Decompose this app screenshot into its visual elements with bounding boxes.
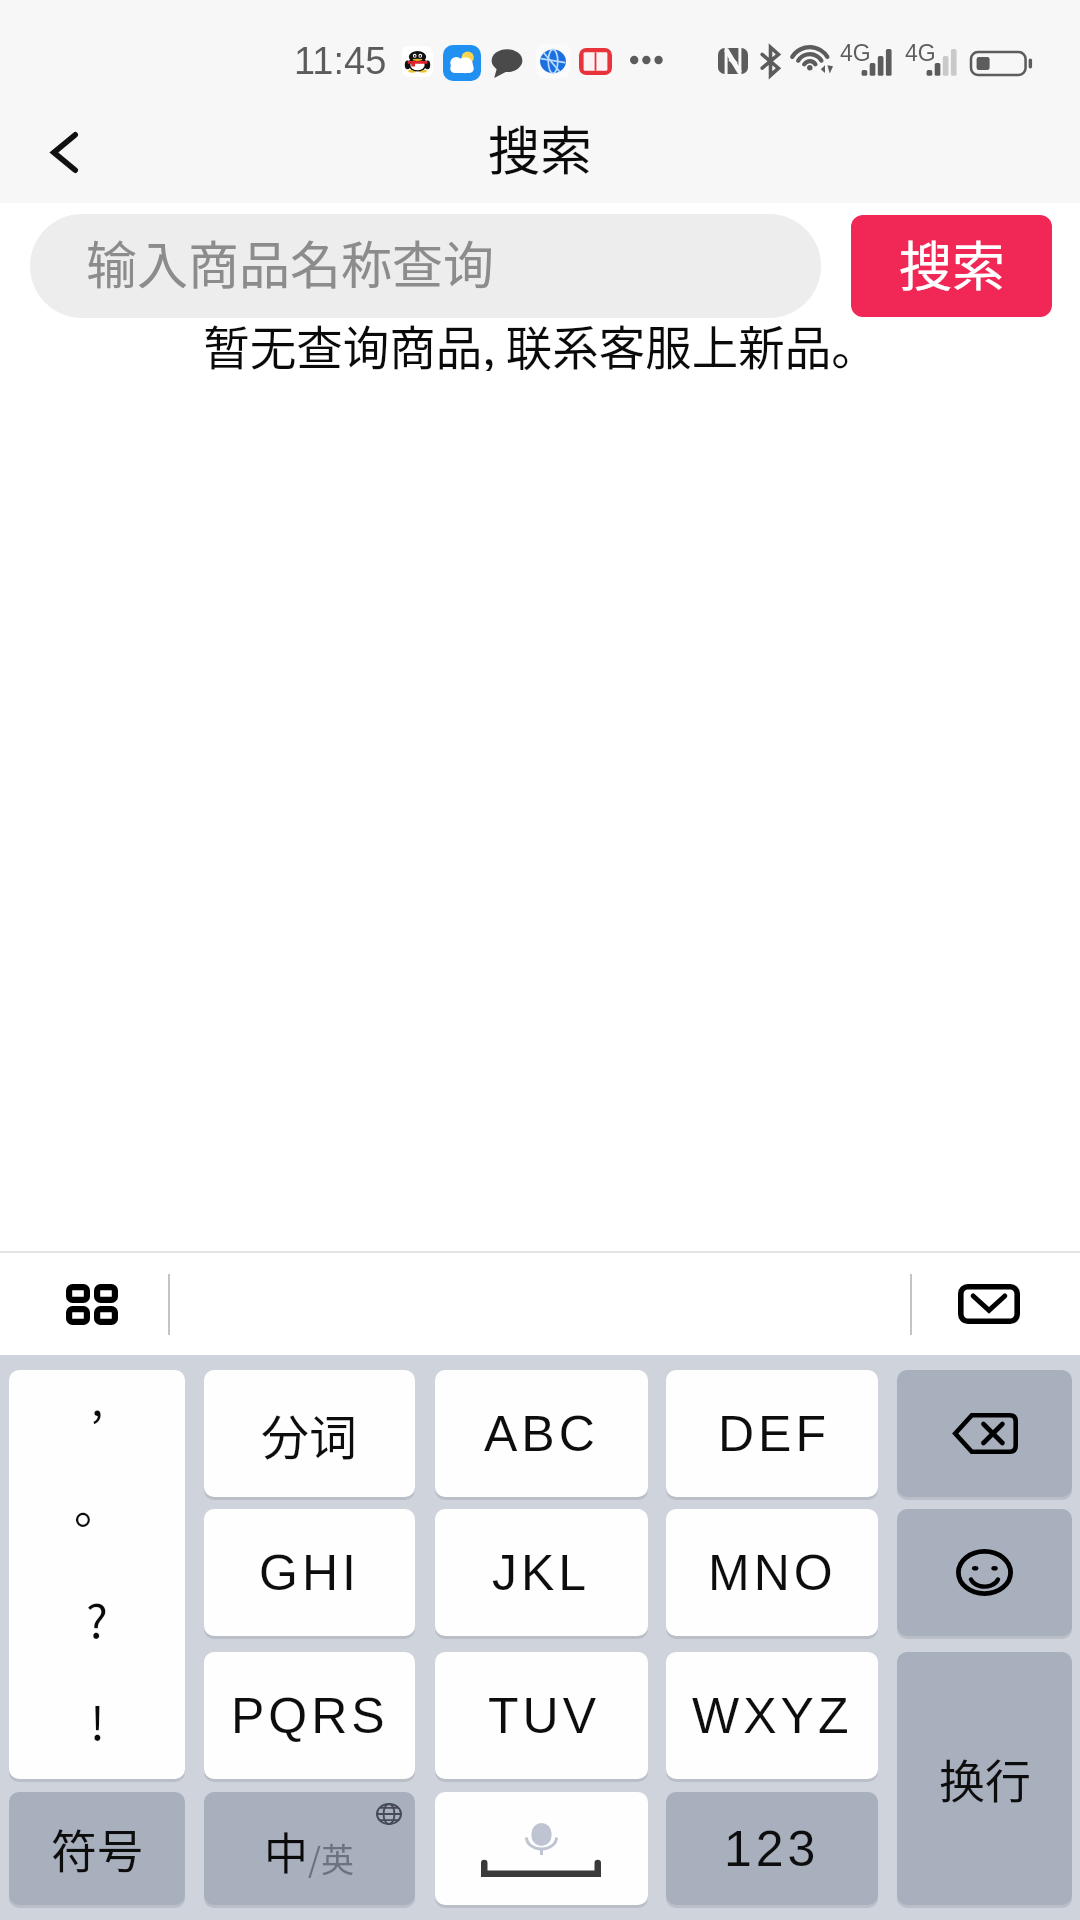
button[interactable]: 符号 [9,1792,185,1905]
button[interactable]: MNO [666,1509,878,1636]
staticText: 分词 [261,1399,358,1469]
button[interactable]: Emoji [897,1509,1072,1636]
staticText: GHI [259,1545,360,1601]
staticText: 4G [905,40,936,66]
button[interactable]: 搜索 [851,215,1052,317]
staticText: PQRS [231,1688,389,1744]
button[interactable]: PQRS [204,1652,415,1779]
button[interactable]: 换行 [897,1652,1072,1905]
button[interactable]: Back [0,101,118,203]
staticText: ! [90,1687,105,1754]
button[interactable]: ABC [435,1370,648,1497]
staticText: , [91,1370,104,1429]
button[interactable]: Switch input language [204,1792,415,1905]
staticText: 暂无查询商品, 联系客服上新品。 [203,311,878,371]
staticText: DEF [716,1406,828,1462]
staticText: 。 [74,1470,120,1537]
staticText: 换行 [939,1745,1031,1812]
button[interactable]: Hide keyboard [942,1253,1036,1355]
button[interactable]: TUV [435,1652,648,1779]
button[interactable]: Backspace [897,1370,1072,1497]
staticText: 123 [724,1821,820,1877]
button[interactable]: DEF [666,1370,878,1497]
staticText: WXYZ [692,1688,853,1744]
staticText: 搜索 [488,110,593,185]
button[interactable]: WXYZ [666,1652,878,1779]
staticText: /英 [308,1834,354,1882]
button[interactable]: JKL [435,1509,648,1636]
staticText: TUV [486,1688,598,1744]
staticText: ? [86,1585,108,1652]
staticText: 输入商品名称查询 [86,225,495,299]
button[interactable]: Keyboard panels [36,1253,148,1355]
staticText: MNO [708,1545,837,1601]
staticText: ABC [484,1406,599,1462]
staticText: 中 [264,1819,308,1883]
button[interactable]: , [9,1370,185,1779]
button[interactable]: Space [435,1792,648,1905]
staticText: 符号 [51,1815,143,1882]
staticText: 11:45 [294,40,387,82]
staticText: 4G [840,40,871,66]
button[interactable]: 分词 [204,1370,415,1497]
staticText: JKL [492,1545,591,1601]
button[interactable]: 输入商品名称查询 [30,214,821,318]
button[interactable]: 123 [666,1792,878,1905]
staticText: 搜索 [899,225,1005,302]
button[interactable]: GHI [204,1509,415,1636]
